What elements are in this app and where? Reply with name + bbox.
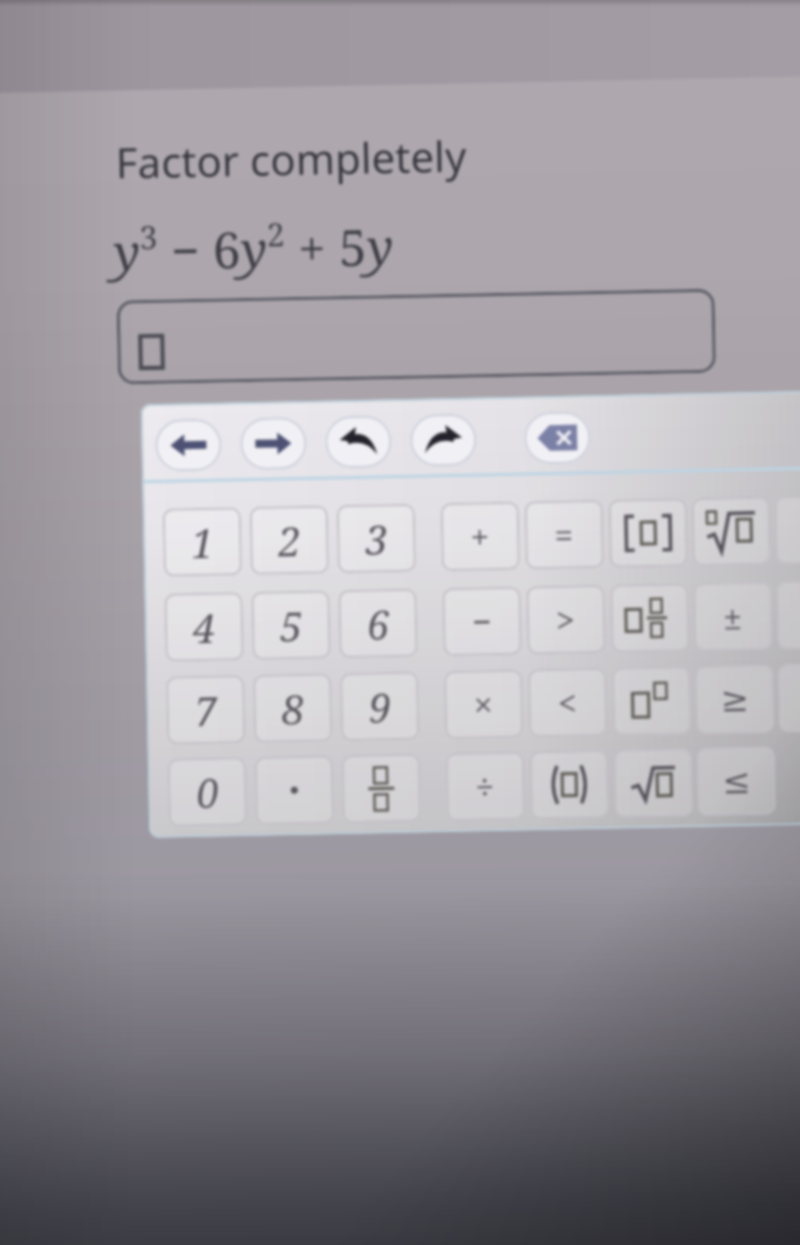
button[interactable]: 1	[163, 507, 242, 577]
staticText: >	[555, 596, 576, 643]
staticText: 7	[194, 683, 218, 737]
button[interactable]	[614, 748, 693, 818]
button[interactable]: 0	[168, 757, 247, 827]
staticText: ±	[722, 593, 743, 639]
staticText: 6	[366, 596, 391, 651]
staticText: +	[470, 513, 491, 560]
button[interactable]: ≤	[697, 746, 776, 816]
staticText: 0	[196, 765, 220, 819]
button[interactable]	[524, 411, 591, 464]
button[interactable]	[155, 419, 222, 472]
button[interactable]	[776, 580, 800, 649]
button[interactable]: 8	[253, 673, 332, 743]
button[interactable]	[530, 750, 609, 819]
button[interactable]	[240, 417, 307, 470]
staticText: 5	[279, 598, 304, 652]
button[interactable]	[692, 497, 771, 566]
staticText: Factor completely	[115, 127, 467, 191]
button[interactable]: +	[441, 502, 520, 571]
button[interactable]: −	[442, 587, 522, 656]
staticText: −	[471, 598, 492, 645]
staticText: 1	[191, 515, 215, 569]
staticText: 9	[368, 679, 392, 734]
button[interactable]: ≥	[695, 664, 774, 734]
button[interactable]	[610, 583, 690, 653]
staticText: 4	[192, 600, 217, 654]
button[interactable]: 6	[338, 589, 418, 658]
staticText: 3	[365, 511, 389, 566]
staticText: ≤	[722, 761, 752, 802]
button[interactable]	[612, 666, 691, 736]
staticText: <	[557, 679, 578, 726]
button[interactable]: ÷	[446, 751, 525, 821]
button[interactable]	[116, 289, 716, 385]
button[interactable]	[609, 498, 688, 568]
button[interactable]: 4	[164, 592, 244, 662]
button[interactable]: 3	[337, 504, 416, 573]
staticText: 2	[278, 513, 302, 567]
button[interactable]: ±	[693, 581, 773, 651]
staticText: =	[554, 511, 575, 558]
button[interactable]: 2	[250, 505, 329, 575]
button[interactable]	[255, 755, 334, 825]
staticText: ×	[473, 681, 494, 727]
button[interactable]	[410, 413, 477, 467]
staticText: ÷	[475, 763, 496, 809]
button[interactable]: <	[528, 668, 607, 737]
button[interactable]	[778, 663, 800, 732]
staticText: ≥	[720, 679, 750, 720]
staticText: 8	[281, 681, 305, 735]
staticText: y3 − 6y2 + 5y	[113, 210, 394, 286]
button[interactable]	[342, 754, 421, 823]
button[interactable]: =	[525, 500, 604, 569]
button[interactable]: ×	[444, 670, 523, 739]
button[interactable]: 5	[251, 590, 331, 660]
button[interactable]: 7	[166, 675, 245, 745]
button[interactable]: 9	[340, 672, 419, 741]
button[interactable]	[325, 415, 392, 468]
button[interactable]	[774, 495, 800, 564]
button[interactable]: >	[526, 585, 606, 654]
